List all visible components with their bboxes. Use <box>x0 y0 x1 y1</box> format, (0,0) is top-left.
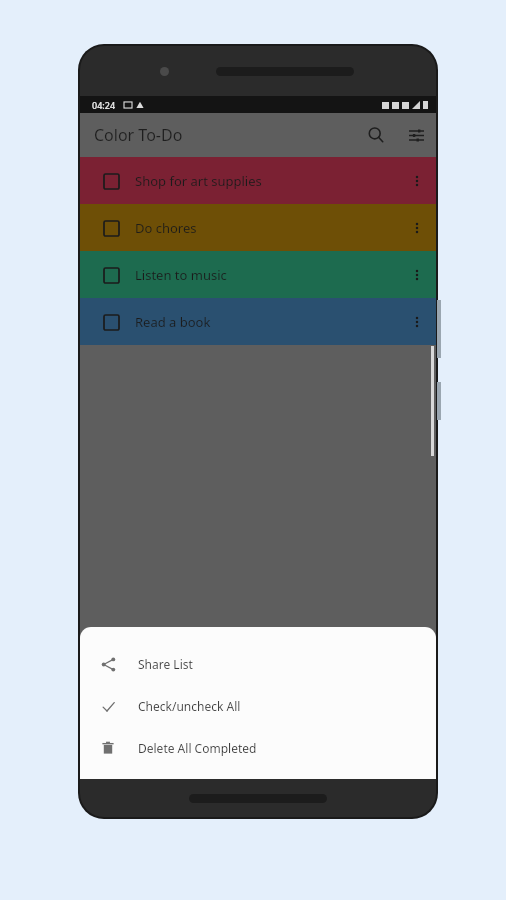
staticText: Listen to music <box>135 266 398 284</box>
button[interactable]: Toggle Read a book <box>80 298 436 345</box>
staticText: Check/uncheck All <box>138 698 241 714</box>
button[interactable]: Filter options <box>396 115 436 155</box>
button[interactable]: Toggle Do chores <box>80 204 436 251</box>
button[interactable]: More options for Do chores <box>398 209 436 247</box>
button[interactable]: Toggle Read a book <box>96 307 126 337</box>
staticText: Do chores <box>135 219 398 237</box>
button[interactable]: More options for Listen to music <box>398 256 436 294</box>
button[interactable]: Toggle Do chores <box>96 213 126 243</box>
button[interactable]: More options for Shop for art supplies <box>398 162 436 200</box>
button[interactable]: Toggle Shop for art supplies <box>80 157 436 204</box>
staticText: Share List <box>138 656 193 672</box>
button[interactable]: Search <box>356 115 396 155</box>
button[interactable]: Toggle Listen to music <box>96 260 126 290</box>
button[interactable]: Toggle Listen to music <box>80 251 436 298</box>
button[interactable]: More options for Read a book <box>398 303 436 341</box>
button[interactable]: Check/uncheck All <box>80 685 436 727</box>
button[interactable]: Toggle Shop for art supplies <box>96 166 126 196</box>
button[interactable]: Delete All Completed <box>80 727 436 769</box>
staticText: Shop for art supplies <box>135 172 398 190</box>
button[interactable]: Share List <box>80 643 436 685</box>
staticText: Delete All Completed <box>138 740 257 756</box>
staticText: Color To-Do <box>94 124 183 146</box>
staticText: Read a book <box>135 313 398 331</box>
staticText: 04:24 <box>92 99 116 111</box>
